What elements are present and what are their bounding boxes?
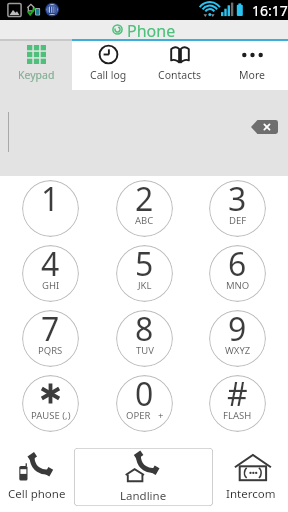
staticText: PAUSE (,) [31,409,71,422]
staticText: Landline [120,488,167,504]
staticText: Intercom [226,486,276,502]
button[interactable]: 8 [116,310,173,367]
staticText: PQRS [38,344,63,357]
staticText: 16:17 [252,1,288,20]
staticText: 3 [228,180,247,221]
staticText: 5 [135,245,154,286]
staticText: Contacts [158,68,202,82]
staticText: Phone [127,20,176,39]
staticText: MNO [226,279,250,292]
button[interactable]: More [216,41,288,90]
staticText: DEF [229,214,247,227]
button[interactable]: 3 [209,180,266,237]
button[interactable]: 9 [209,310,266,367]
staticText: Cell phone [8,486,66,502]
staticText: 7 [41,310,60,351]
staticText: 4 [41,245,60,286]
staticText: TUV [136,344,154,357]
button[interactable]: # [209,375,266,432]
button[interactable]: 5 [116,245,173,302]
button[interactable]: Contacts [144,41,216,90]
staticText: FLASH [223,409,252,422]
staticText: 9 [228,310,247,351]
staticText: Call log [90,68,127,82]
button[interactable]: 7 [22,310,79,367]
button[interactable]: Landline [74,448,213,506]
button[interactable]: Call log [72,41,144,90]
staticText: WXYZ [225,344,251,357]
staticText: GHI [42,279,60,292]
button[interactable]: Intercom [214,442,288,508]
staticText: 2 [135,180,154,221]
button[interactable]: 0 [116,375,173,432]
button[interactable]: Cell phone [0,442,74,508]
staticText: 1 [41,180,60,221]
staticText: + [158,409,164,422]
button[interactable] [0,41,72,90]
button[interactable]: 4 [22,245,79,302]
button[interactable]: Delete [251,120,278,134]
button[interactable]: PAUSE (,) [22,375,79,432]
staticText: 8 [135,310,154,351]
staticText: OPER [126,409,151,422]
staticText: 6 [228,245,247,286]
staticText: # [227,375,248,416]
button[interactable]: Keypad [0,41,72,90]
staticText: Keypad [18,68,55,82]
staticText: More [239,68,265,82]
button[interactable]: 6 [209,245,266,302]
staticText: ABC [135,214,154,227]
staticText: JKL [138,279,152,292]
staticText: 0 [135,375,154,416]
button[interactable]: 1 [22,180,79,237]
button[interactable]: 2 [116,180,173,237]
